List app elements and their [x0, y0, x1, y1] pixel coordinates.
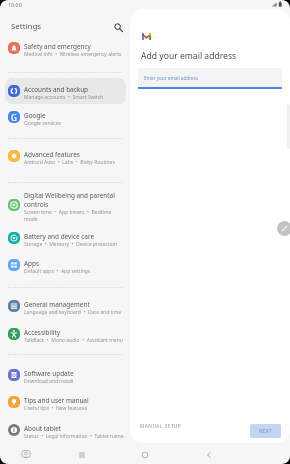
- staticText: Default apps • App settings: [24, 268, 91, 275]
- button[interactable]: Safety and emergency: [5, 35, 126, 61]
- staticText: Digital Wellbeing and parental controls: [24, 191, 126, 209]
- staticText: Status • Legal information • Tablet name: [24, 433, 124, 440]
- staticText: Battery and device care: [24, 232, 95, 241]
- staticText: G: [11, 112, 17, 123]
- button[interactable]: Edit: [277, 221, 290, 236]
- staticText: Safety and emergency: [24, 42, 91, 51]
- staticText: Accounts and backup: [24, 85, 89, 94]
- button[interactable]: Screenshot: [15, 444, 37, 464]
- button[interactable]: MANUAL SETUP: [140, 423, 182, 429]
- staticText: Useful tips • New features: [24, 405, 88, 412]
- button[interactable]: Tips and user manual: [5, 389, 126, 415]
- staticText: Download and install: [24, 378, 74, 385]
- staticText: Language and keyboard • Date and time: [24, 309, 122, 316]
- button[interactable]: Battery and device care: [5, 225, 126, 251]
- button[interactable]: Enter your email address: [138, 68, 282, 87]
- staticText: Software update: [24, 369, 74, 378]
- button[interactable]: Advanced features: [5, 143, 126, 169]
- staticText: Manage accounts • Smart Switch: [24, 94, 104, 101]
- staticText: About tablet: [24, 424, 62, 433]
- staticText: Google services: [24, 120, 61, 127]
- button[interactable]: Accessibility: [5, 321, 126, 347]
- button[interactable]: Software update: [5, 362, 126, 388]
- staticText: Accessibility: [24, 328, 61, 337]
- button[interactable]: Apps: [5, 252, 126, 278]
- staticText: Storage • Memory • Device protection: [24, 241, 118, 248]
- staticText: TalkBack • Mono audio • Assistant menu: [24, 337, 123, 344]
- button[interactable]: General management: [5, 293, 126, 319]
- button[interactable]: Home: [134, 445, 156, 464]
- button[interactable]: About tablet: [5, 417, 126, 443]
- staticText: Screen time • App timers • Bedtime mode: [24, 209, 112, 223]
- staticText: Android Auto • Labs • Bixby Routines: [24, 159, 115, 166]
- staticText: Google: [24, 111, 46, 120]
- staticText: 10:00: [8, 1, 22, 8]
- button[interactable]: Search: [111, 20, 125, 34]
- staticText: Settings: [11, 21, 42, 32]
- staticText: NEXT: [259, 428, 273, 434]
- staticText: Apps: [24, 259, 40, 268]
- staticText: Enter your email address: [144, 75, 198, 81]
- button[interactable]: Digital Wellbeing and parental controls: [5, 187, 126, 223]
- staticText: Advanced features: [24, 150, 80, 159]
- button[interactable]: Recent apps: [71, 445, 93, 464]
- button[interactable]: NEXT: [250, 424, 281, 438]
- staticText: General management: [24, 300, 90, 309]
- staticText: Add your email address: [141, 50, 237, 62]
- button[interactable]: Accounts and backup: [5, 78, 126, 104]
- staticText: Medical info • Wireless emergency alerts: [24, 51, 122, 58]
- staticText: Tips and user manual: [24, 396, 89, 405]
- button[interactable]: G: [5, 104, 126, 130]
- button[interactable]: Back: [198, 445, 220, 464]
